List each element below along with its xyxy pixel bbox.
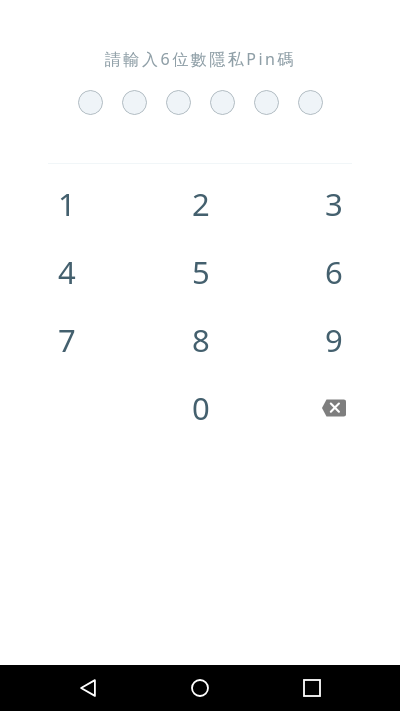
button[interactable]: 0 — [134, 374, 267, 442]
button[interactable]: Home — [177, 665, 223, 711]
button[interactable]: Recent apps — [289, 665, 335, 711]
staticText: 2 — [192, 183, 210, 225]
button[interactable]: 5 — [134, 238, 267, 306]
staticText: 9 — [325, 319, 343, 361]
staticText: 請輸入6位數隱私Pin碼 — [105, 48, 296, 70]
button[interactable]: 6 — [267, 238, 400, 306]
button[interactable]: 3 — [267, 170, 400, 238]
button[interactable]: 1 — [0, 170, 134, 238]
staticText: 4 — [58, 251, 76, 293]
button[interactable]: 9 — [267, 306, 400, 374]
staticText: 3 — [325, 183, 343, 225]
button[interactable]: 4 — [0, 238, 134, 306]
button[interactable]: 7 — [0, 306, 134, 374]
staticText: 7 — [58, 319, 76, 361]
staticText: 5 — [192, 251, 210, 293]
button[interactable]: Back — [65, 665, 111, 711]
staticText: 0 — [192, 387, 210, 429]
staticText: 1 — [58, 183, 76, 225]
staticText: 8 — [192, 319, 210, 361]
staticText: 6 — [325, 251, 343, 293]
button[interactable]: 8 — [134, 306, 267, 374]
button[interactable]: Backspace — [267, 374, 400, 442]
button[interactable]: 2 — [134, 170, 267, 238]
